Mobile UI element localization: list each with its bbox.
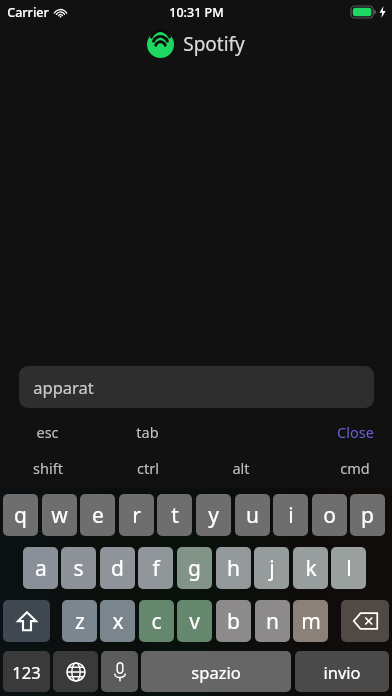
button[interactable]: tab (136, 422, 159, 442)
button[interactable]: cmd (340, 458, 370, 478)
staticText: s (73, 554, 84, 583)
button[interactable]: n (255, 600, 290, 642)
button[interactable]: shift (33, 458, 63, 478)
button[interactable]: c (139, 600, 174, 642)
button[interactable]: apparat (19, 366, 374, 408)
button[interactable]: Shift (3, 600, 50, 642)
button[interactable]: i (273, 494, 308, 536)
button[interactable]: s (61, 547, 96, 589)
button[interactable]: r (119, 494, 154, 536)
staticText: apparat (33, 376, 94, 398)
staticText: a (35, 554, 47, 583)
button[interactable]: t (157, 494, 192, 536)
button[interactable]: z (62, 600, 97, 642)
button[interactable]: Dictate (101, 651, 138, 692)
staticText: h (227, 554, 240, 583)
button[interactable]: m (293, 600, 328, 642)
button[interactable]: h (216, 547, 251, 589)
button[interactable]: a (23, 547, 58, 589)
staticText: invio (323, 661, 361, 683)
staticText: x (112, 607, 124, 636)
staticText: u (246, 501, 259, 530)
button[interactable]: esc (36, 422, 59, 442)
button[interactable]: x (100, 600, 135, 642)
staticText: Spotify (183, 31, 245, 57)
staticText: i (288, 501, 294, 530)
staticText: c (151, 607, 162, 636)
staticText: Carrier (7, 4, 49, 21)
button[interactable]: d (100, 547, 135, 589)
staticText: spazio (191, 661, 241, 683)
staticText: m (301, 607, 321, 636)
staticText: b (227, 607, 240, 636)
staticText: q (14, 501, 27, 530)
button[interactable]: ctrl (137, 458, 159, 478)
button[interactable]: 123 (3, 651, 50, 692)
staticText: d (111, 554, 124, 583)
button[interactable]: Backspace (341, 600, 389, 642)
button[interactable]: spazio (141, 651, 291, 692)
staticText: f (152, 554, 160, 583)
staticText: e (92, 501, 104, 530)
button[interactable]: q (3, 494, 38, 536)
button[interactable]: k (293, 547, 328, 589)
staticText: o (323, 501, 336, 530)
button[interactable]: y (196, 494, 231, 536)
staticText: l (346, 554, 352, 583)
button[interactable]: b (216, 600, 251, 642)
button[interactable]: p (350, 494, 385, 536)
staticText: r (132, 501, 141, 530)
button[interactable]: e (80, 494, 115, 536)
button[interactable]: l (331, 547, 366, 589)
button[interactable]: invio (295, 651, 389, 692)
button[interactable]: alt (232, 458, 250, 478)
staticText: n (266, 607, 279, 636)
staticText: 10:31 PM (169, 4, 224, 21)
staticText: z (75, 607, 85, 636)
button[interactable]: o (312, 494, 347, 536)
button[interactable]: Close (337, 422, 374, 442)
button[interactable]: Switch keyboard (53, 651, 98, 692)
staticText: w (51, 501, 68, 530)
staticText: y (208, 501, 219, 530)
staticText: v (189, 607, 200, 636)
staticText: t (171, 501, 179, 530)
staticText: g (188, 554, 201, 583)
staticText: 123 (12, 661, 41, 683)
button[interactable]: j (254, 547, 289, 589)
button[interactable]: v (177, 600, 212, 642)
staticText: p (361, 501, 374, 530)
button[interactable]: w (42, 494, 77, 536)
staticText: j (269, 554, 275, 583)
button[interactable]: g (177, 547, 212, 589)
button[interactable]: f (138, 547, 173, 589)
staticText: k (305, 554, 317, 583)
button[interactable]: u (235, 494, 270, 536)
